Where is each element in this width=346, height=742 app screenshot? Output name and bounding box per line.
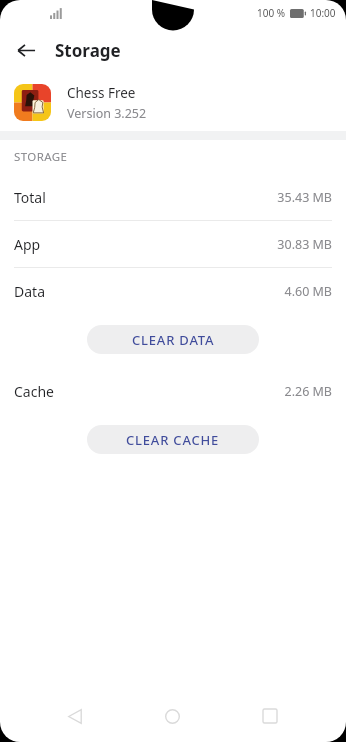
button[interactable]: Data [0,268,346,314]
button[interactable]: CLEAR DATA [87,325,259,354]
button[interactable]: Back [8,32,44,68]
staticText: 100 % [257,6,286,20]
staticText: Storage [55,39,121,62]
button[interactable]: Chess Free [0,74,346,131]
button[interactable]: CLEAR CACHE [87,425,259,454]
staticText: 10:00 [310,6,336,20]
staticText: App [14,235,41,254]
button[interactable]: App [0,221,346,267]
staticText: Version 3.252 [67,105,147,122]
staticText: Total [14,188,46,207]
button[interactable]: Total [0,174,346,220]
button[interactable]: Cache [0,368,346,414]
staticText: 30.83 MB [277,236,332,253]
staticText: Cache [14,382,54,401]
staticText: 35.43 MB [277,189,332,206]
staticText: CLEAR CACHE [126,431,220,449]
staticText: STORAGE [14,149,68,165]
button[interactable]: Back [53,694,97,738]
button[interactable]: Recents [248,694,292,738]
staticText: 4.60 MB [284,283,332,300]
staticText: CLEAR DATA [132,331,215,349]
button[interactable]: Home [150,694,194,738]
staticText: Data [14,282,45,301]
staticText: 2.26 MB [284,383,332,400]
staticText: Chess Free [67,84,136,102]
